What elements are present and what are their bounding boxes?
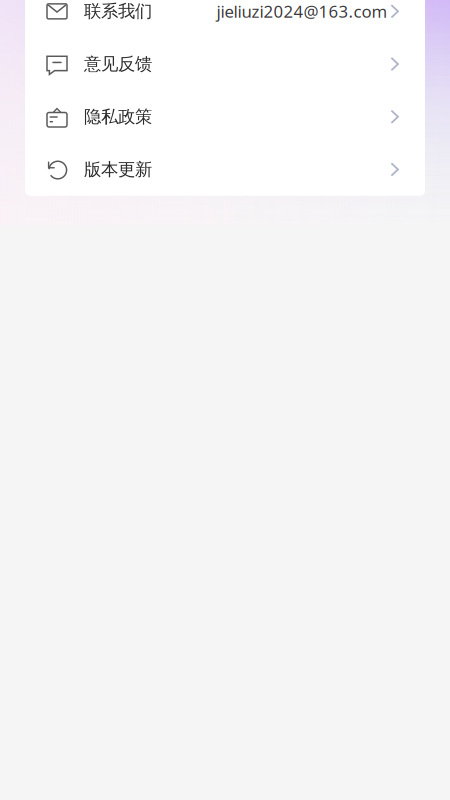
button[interactable]: 联系我们 <box>25 0 425 38</box>
button[interactable]: 隐私政策 <box>25 90 425 143</box>
button[interactable]: 意见反馈 <box>25 38 425 90</box>
staticText: 意见反馈 <box>84 53 152 75</box>
staticText: 隐私政策 <box>84 106 152 127</box>
button[interactable]: 版本更新 <box>25 143 425 196</box>
staticText: jieliuzi2024@163.com <box>216 0 387 23</box>
staticText: 联系我们 <box>84 1 152 22</box>
staticText: 版本更新 <box>84 159 152 180</box>
